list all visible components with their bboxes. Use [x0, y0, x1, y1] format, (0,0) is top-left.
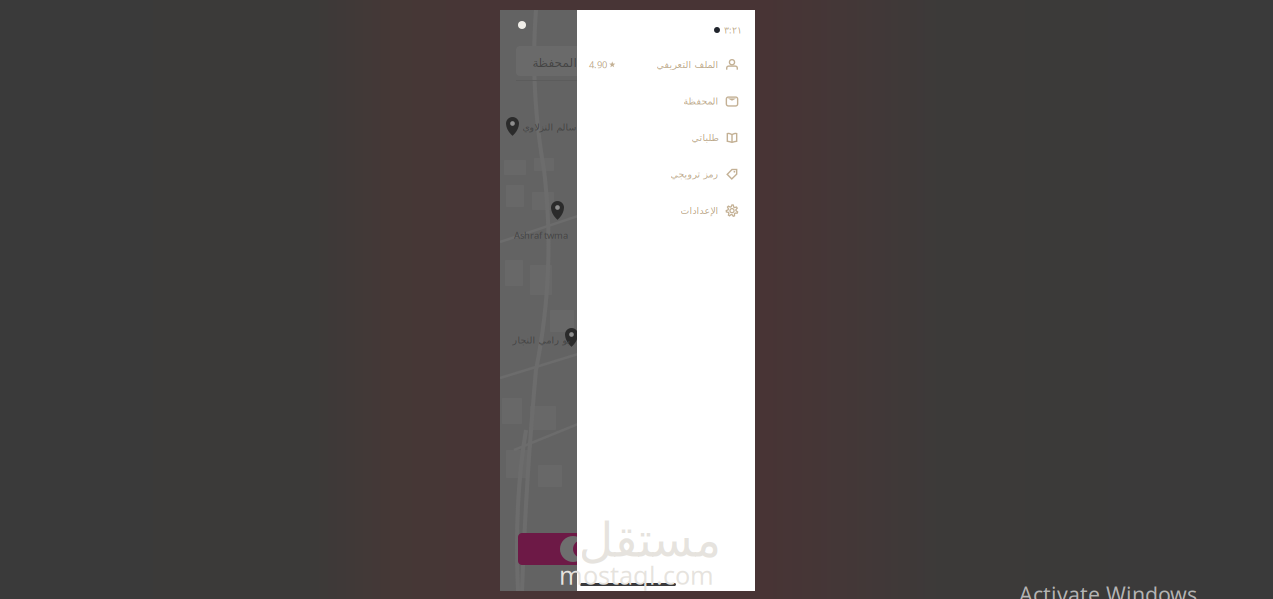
staticText: ٣:٢١ [724, 24, 742, 36]
button[interactable]: الإعدادات [577, 192, 755, 229]
staticText: Activate Windows [1019, 580, 1197, 599]
staticText: الملف التعريفي [656, 59, 718, 70]
button[interactable]: طلباتي [577, 119, 755, 156]
staticText: طلباتي [691, 132, 718, 143]
staticText: المحفظة [683, 96, 718, 106]
staticText: رمز ترويجي [670, 169, 718, 179]
button[interactable]: رمز ترويجي [577, 156, 755, 192]
button[interactable]: المحفظة [577, 83, 755, 119]
staticText: mostaql.com [559, 558, 714, 592]
staticText: يد المحفظة [532, 56, 589, 70]
button[interactable]: 4.90 [577, 46, 755, 83]
staticText: Ashraf twma [514, 229, 568, 241]
staticText: حمد سالم النزلاوي [522, 122, 595, 133]
staticText: بو رامي النجار [512, 335, 570, 346]
staticText: الإعدادات [680, 205, 718, 216]
staticText: 4.90 [589, 58, 607, 71]
staticText: مستقل [578, 513, 721, 567]
